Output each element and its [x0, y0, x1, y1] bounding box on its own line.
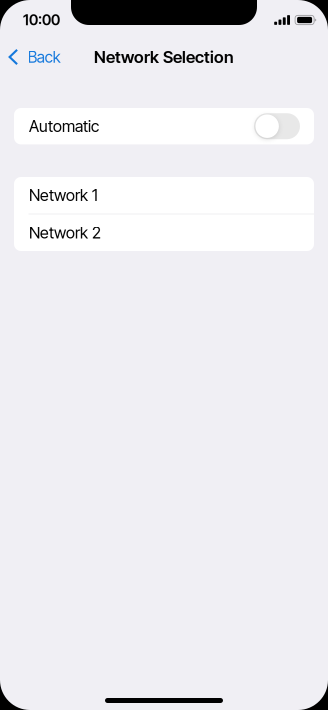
staticText: Automatic — [29, 116, 99, 136]
button[interactable]: Automatic — [14, 108, 314, 144]
staticText: Network Selection — [94, 47, 234, 67]
staticText: 10:00 — [23, 11, 60, 29]
staticText: Network 1 — [29, 185, 98, 205]
staticText: Back — [28, 47, 61, 66]
button[interactable]: Network 2 — [14, 215, 314, 251]
button[interactable]: Back — [0, 41, 69, 72]
staticText: Network 2 — [29, 223, 101, 242]
button[interactable]: Network 1 — [14, 177, 314, 213]
